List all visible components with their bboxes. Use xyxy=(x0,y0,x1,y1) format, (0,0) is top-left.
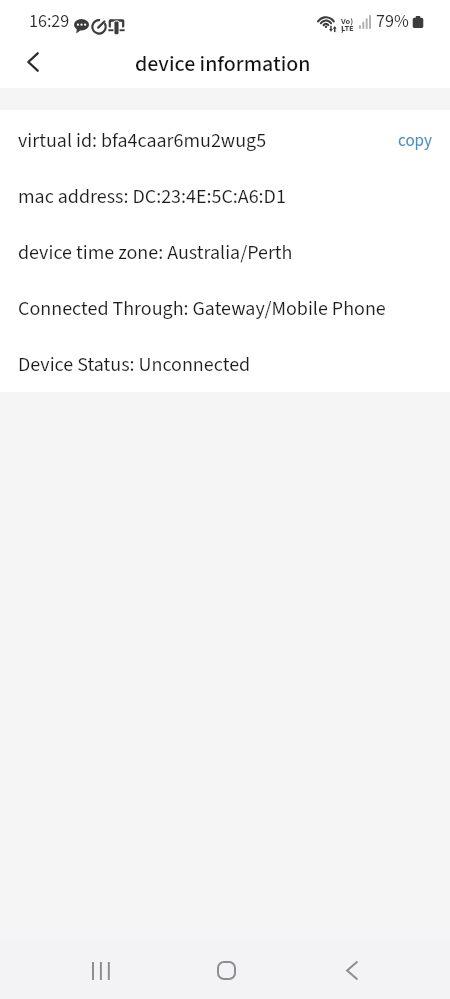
staticText: Connected Through: Gateway/Mobile Phone xyxy=(18,295,386,323)
button[interactable]: Home xyxy=(163,942,289,999)
button[interactable]: device time zone: Australia/Perth xyxy=(0,225,450,281)
button[interactable]: Recent apps xyxy=(37,942,163,999)
button[interactable]: Connected Through: Gateway/Mobile Phone xyxy=(0,281,450,337)
staticText: device time zone: Australia/Perth xyxy=(18,239,293,267)
staticText: device information xyxy=(135,48,311,79)
button[interactable]: Back xyxy=(11,44,54,87)
button[interactable]: Device Status: Unconnected xyxy=(0,337,450,392)
staticText: 79% xyxy=(376,9,409,35)
staticText: virtual id: bfa4caar6mu2wug5 xyxy=(18,127,267,155)
button[interactable]: virtual id: bfa4caar6mu2wug5 xyxy=(0,113,450,169)
staticText: Vo)) xyxy=(341,15,356,33)
staticText: copy xyxy=(398,129,432,153)
button[interactable]: mac address: DC:23:4E:5C:A6:D1 xyxy=(0,169,450,225)
staticText: 16:29 xyxy=(29,9,70,35)
staticText: mac address: DC:23:4E:5C:A6:D1 xyxy=(18,183,286,211)
staticText: Device Status: Unconnected xyxy=(18,351,251,379)
staticText: LTE xyxy=(341,22,354,34)
button[interactable]: Back xyxy=(289,942,415,999)
button[interactable]: copy xyxy=(398,129,432,153)
